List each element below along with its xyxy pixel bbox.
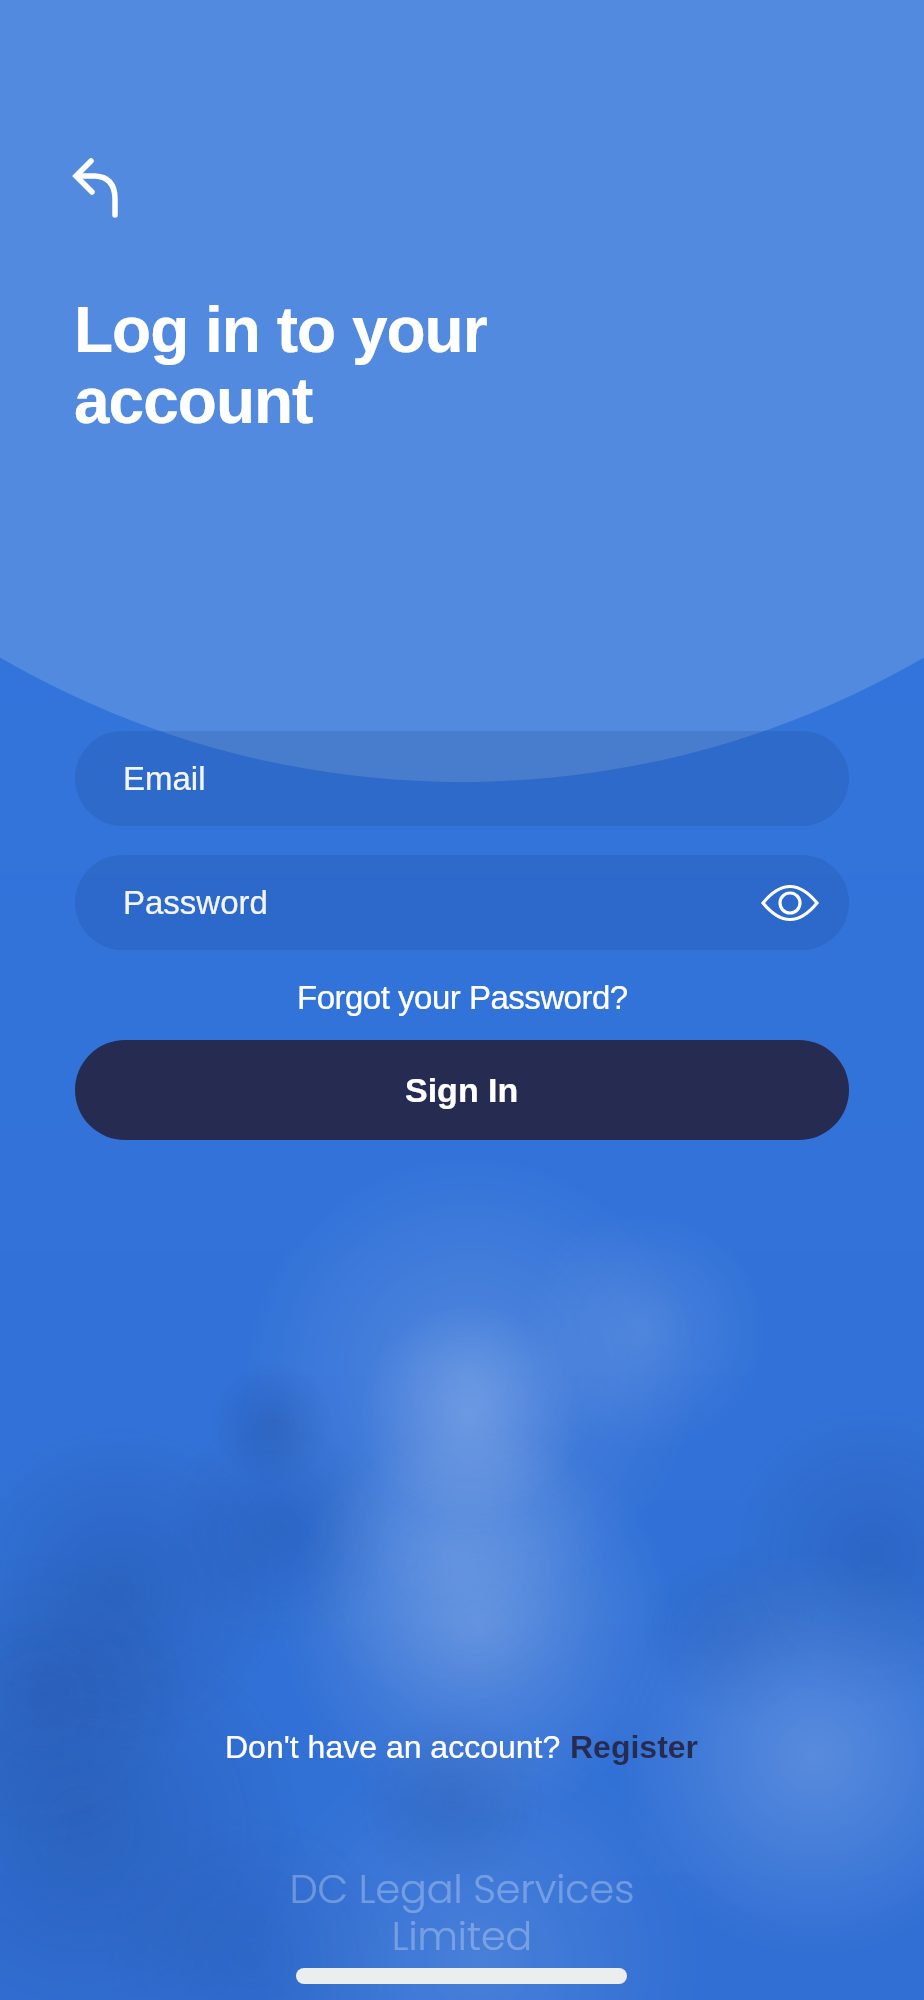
staticText: Log in to your account — [74, 294, 487, 436]
button[interactable] — [56, 140, 136, 220]
button[interactable]: Password — [75, 855, 849, 950]
staticText: Password — [123, 884, 268, 921]
staticText: Forgot your Password? — [297, 979, 628, 1016]
button[interactable]: Don't have an account? — [0, 1725, 924, 1769]
staticText: Email — [123, 760, 206, 797]
button[interactable]: Forgot your Password? — [0, 975, 924, 1019]
button[interactable]: Email — [75, 731, 849, 826]
staticText: Sign In — [405, 1071, 519, 1109]
staticText: DC Legal Services Limited — [0, 1862, 924, 1964]
button[interactable]: Sign In — [75, 1040, 849, 1140]
staticText: Register — [570, 1729, 699, 1765]
staticText: Don't have an account? — [225, 1729, 570, 1765]
